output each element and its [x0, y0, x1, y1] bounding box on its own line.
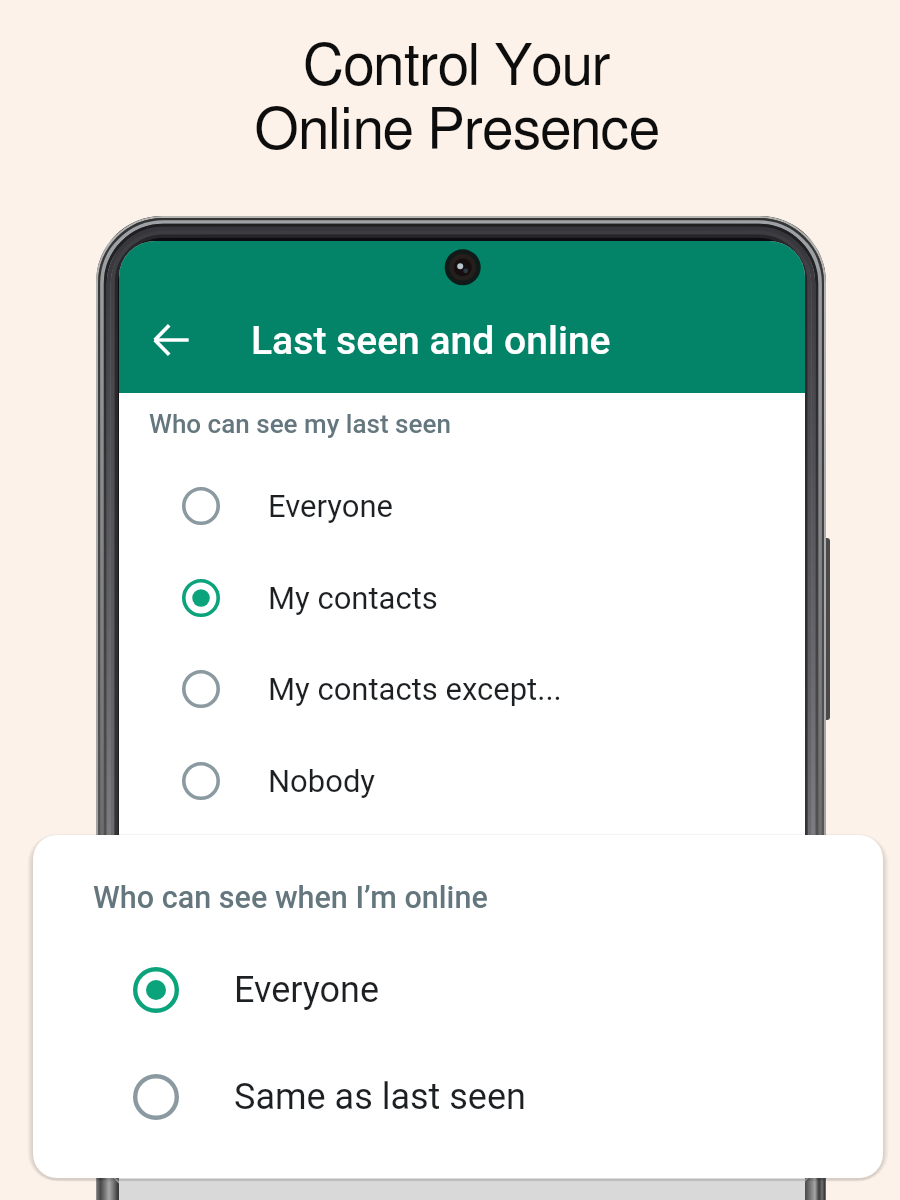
- staticText: My contacts except...: [268, 671, 562, 707]
- staticText: Nobody: [268, 763, 376, 799]
- staticText: Last seen and online: [251, 318, 611, 364]
- staticText: Everyone: [268, 488, 393, 524]
- button[interactable]: My contacts: [119, 552, 805, 644]
- staticText: My contacts: [268, 580, 438, 616]
- button[interactable]: Nobody: [119, 735, 805, 827]
- staticText: Same as last seen: [234, 1076, 526, 1118]
- button[interactable]: Back: [142, 311, 200, 369]
- button[interactable]: Everyone: [119, 460, 805, 552]
- button[interactable]: Same as last seen: [33, 1045, 883, 1149]
- staticText: Who can see my last seen: [149, 409, 451, 439]
- button[interactable]: Everyone: [33, 938, 883, 1042]
- staticText: Who can see when I’m online: [93, 880, 488, 916]
- button[interactable]: My contacts except...: [119, 643, 805, 735]
- staticText: Everyone: [234, 969, 380, 1011]
- staticText: Control Your Online Presence: [7, 39, 900, 160]
